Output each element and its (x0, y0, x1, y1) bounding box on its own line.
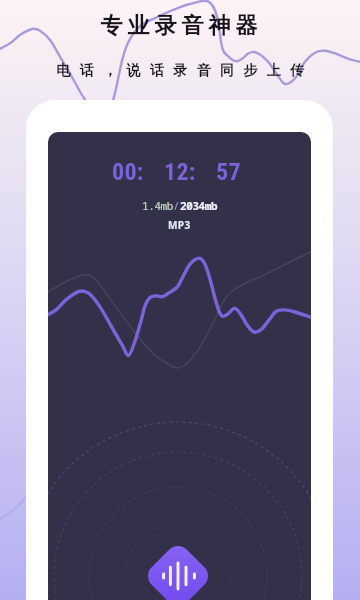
staticText: MP3 (168, 218, 191, 232)
staticText: 00: (112, 158, 144, 186)
staticText: / (173, 198, 180, 213)
staticText: 12: (164, 158, 196, 186)
staticText: 专业录音神器 (98, 12, 260, 40)
staticText: 电话，说话录音同步上传 (56, 62, 314, 80)
button[interactable]: Record (143, 541, 213, 600)
staticText: 57 (216, 158, 241, 186)
staticText: 1.4mb (142, 198, 173, 213)
staticText: 2034mb (180, 198, 218, 213)
